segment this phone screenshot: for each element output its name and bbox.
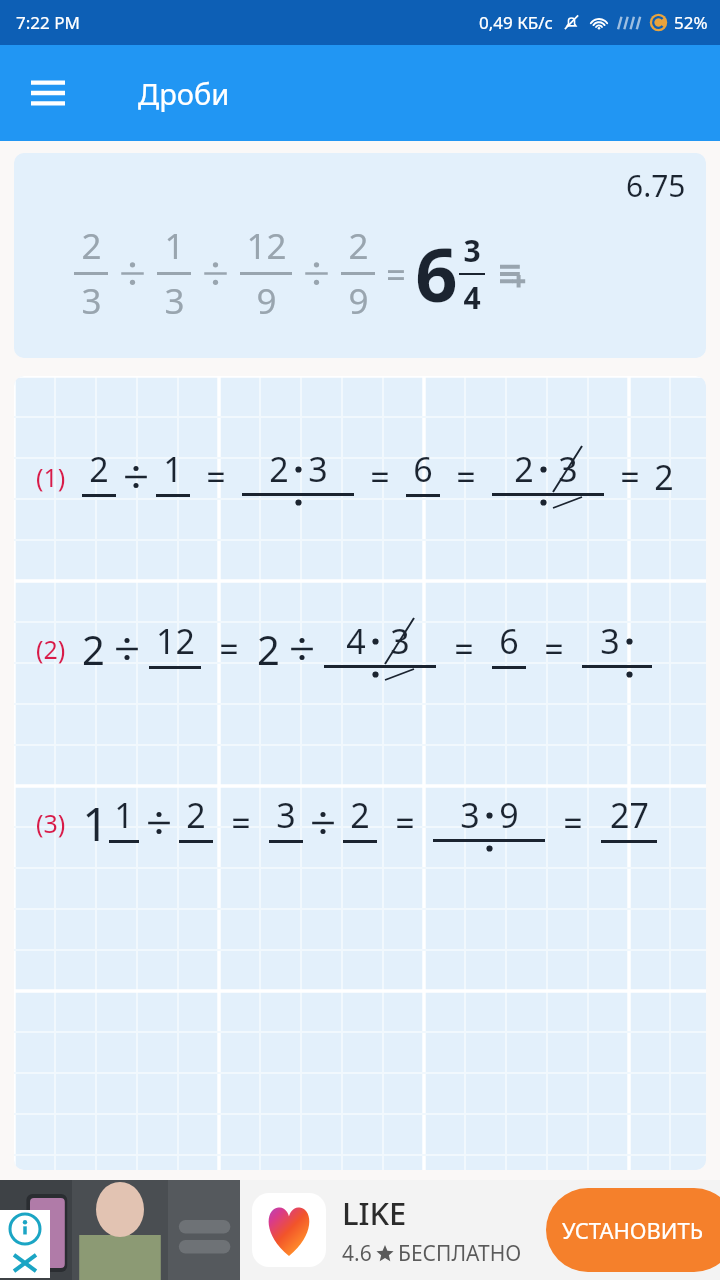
staticText: 2 (81, 222, 102, 270)
staticText: 4 (463, 277, 481, 318)
staticText: = (563, 800, 583, 846)
staticText: 9 (256, 277, 277, 325)
staticText: 1 (164, 222, 185, 270)
staticText: 2 (654, 454, 674, 500)
staticText: 4 (499, 671, 519, 680)
staticText: 4.6 (342, 1239, 372, 1268)
staticText: БЕСПЛАТНО (398, 1239, 522, 1268)
staticText: 0,49 КБ/c (479, 11, 553, 34)
staticText: 6 (413, 446, 433, 492)
staticText: 3 (460, 792, 480, 838)
staticText: 3 (390, 669, 410, 680)
staticText: УСТАНОВИТЬ (562, 1215, 704, 1245)
staticText: 3 (558, 446, 578, 492)
staticText: 1 (308, 497, 328, 508)
staticText: 2 (460, 843, 480, 854)
staticText: 3 (600, 618, 620, 664)
staticText: 3 (163, 499, 183, 508)
staticText: 1 (82, 792, 109, 854)
staticText: = (395, 800, 415, 846)
staticText: 3 (276, 792, 296, 838)
staticText: = (231, 800, 251, 846)
staticText: 27 (610, 792, 649, 838)
staticText: 6 (415, 223, 458, 324)
staticText: 3 (390, 618, 410, 664)
staticText: 2 (257, 622, 280, 676)
staticText: 2 (186, 792, 206, 838)
staticText: 6 (499, 618, 519, 664)
staticText: 7:22 PM (16, 11, 80, 34)
staticText: 9 (348, 277, 369, 325)
staticText: 3 (413, 499, 433, 508)
staticText: 2 (499, 843, 519, 854)
staticText: 3 (89, 499, 109, 508)
staticText: 3 (463, 230, 481, 271)
staticText: = (544, 626, 564, 672)
staticText: 9 (165, 671, 185, 680)
staticText: = (456, 454, 476, 500)
button[interactable]: Add to list (497, 256, 533, 292)
staticText: 2 (269, 446, 289, 492)
staticText: 1 (514, 497, 534, 508)
staticText: = (206, 454, 226, 500)
staticText: 3 (164, 277, 185, 325)
staticText: 3 (308, 446, 328, 492)
staticText: (1) (36, 460, 66, 494)
staticText: 3 (81, 277, 102, 325)
staticText: 2 (350, 792, 370, 838)
staticText: Дроби (138, 74, 230, 113)
staticText: = (386, 251, 406, 297)
staticText: 52% (674, 11, 708, 34)
staticText: = (454, 626, 474, 672)
button[interactable]: УСТАНОВИТЬ (546, 1188, 720, 1272)
staticText: 2 (89, 446, 109, 492)
button[interactable]: 6.75 (14, 153, 706, 358)
staticText: 9 (499, 792, 519, 838)
staticText: 3 (558, 497, 578, 508)
staticText: 2 (348, 222, 369, 270)
button[interactable]: Open navigation menu (18, 63, 78, 123)
staticText: 2 (82, 622, 105, 676)
staticText: = (219, 626, 239, 672)
staticText: 12 (156, 618, 195, 664)
staticText: (2) (36, 632, 66, 666)
staticText: 4 (619, 845, 639, 854)
staticText: 6.75 (626, 165, 686, 206)
staticText: 3 (269, 497, 289, 508)
staticText: = (620, 454, 640, 500)
staticText: = (370, 454, 390, 500)
staticText: 1 (114, 792, 134, 838)
staticText: 12 (246, 222, 287, 270)
staticText: LIKE (342, 1192, 407, 1234)
staticText: 4 (346, 618, 366, 664)
staticText: (3) (36, 806, 66, 840)
button[interactable]: LIKE (0, 1180, 720, 1280)
staticText: 1 (163, 446, 183, 492)
staticText: 2 (514, 446, 534, 492)
